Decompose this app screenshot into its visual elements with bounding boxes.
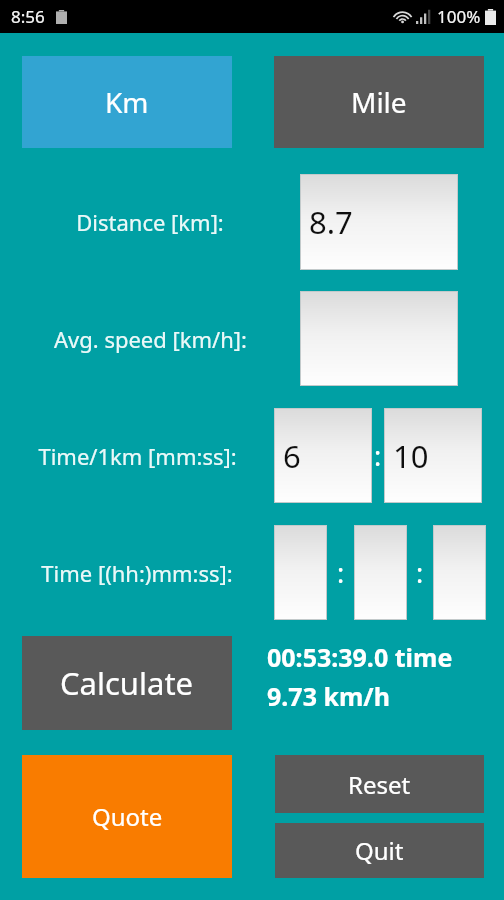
button[interactable]: Quote — [22, 755, 232, 878]
button[interactable]: Distance in km — [300, 174, 458, 270]
button[interactable]: Seconds per km — [384, 408, 482, 503]
staticText: Time/1km [mm:ss]: — [38, 441, 237, 471]
button[interactable]: Minutes — [354, 525, 407, 620]
staticText: Distance [km]: — [76, 207, 224, 237]
button[interactable]: Average speed — [300, 291, 458, 386]
staticText: 00:53:39.0 time — [267, 640, 453, 674]
staticText: : — [416, 554, 424, 591]
button[interactable]: Mile — [274, 56, 484, 148]
staticText: 6 — [283, 435, 301, 477]
staticText: Time [(hh:)mm:ss]: — [41, 558, 233, 588]
staticText: 9.73 km/h — [267, 679, 390, 713]
button[interactable]: Km — [22, 56, 232, 148]
button[interactable]: Reset — [275, 755, 484, 813]
staticText: Reset — [348, 768, 411, 801]
button[interactable]: Minutes per km — [274, 408, 372, 503]
staticText: Quit — [355, 834, 404, 867]
staticText: Quote — [92, 800, 163, 833]
staticText: 8:56 — [11, 5, 45, 28]
staticText: Mile — [351, 83, 407, 121]
staticText: 8.7 — [309, 201, 353, 243]
staticText: Calculate — [60, 662, 194, 704]
staticText: 100% — [437, 5, 481, 28]
button[interactable]: Hours — [274, 525, 327, 620]
staticText: : — [374, 437, 382, 474]
button[interactable]: Seconds — [433, 525, 486, 620]
button[interactable]: Quit — [275, 823, 484, 878]
staticText: Avg. speed [km/h]: — [54, 324, 247, 354]
button[interactable]: Calculate — [22, 636, 232, 730]
staticText: 10 — [393, 435, 429, 477]
staticText: Km — [105, 83, 149, 121]
staticText: : — [337, 554, 345, 591]
